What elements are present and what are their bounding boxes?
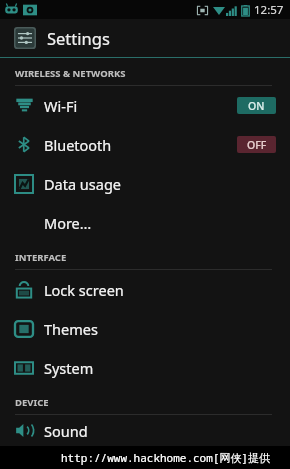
staticText: Sound (44, 421, 88, 441)
staticText: 12:57 (254, 2, 284, 18)
staticText: Data usage (44, 174, 121, 194)
staticText: http://www.hackhome.com[网侠]提供 (61, 450, 270, 465)
staticText: WIRELESS & NETWORKS (15, 67, 126, 80)
button[interactable]: OFF (237, 136, 276, 153)
button[interactable]: Bluetooth (0, 125, 290, 164)
other: Sound (15, 421, 34, 440)
staticText: Lock screen (44, 280, 124, 300)
other: Bluetooth (15, 135, 34, 154)
button[interactable]: Settings (0, 19, 290, 57)
other: System (15, 359, 33, 377)
staticText: Wi-Fi (44, 96, 78, 116)
staticText: Settings (47, 27, 110, 49)
staticText: DEVICE (15, 396, 49, 409)
button[interactable]: Lock screen (0, 270, 290, 309)
other: Lock screen (15, 281, 33, 299)
staticText: Themes (44, 319, 98, 339)
staticText: Bluetooth (44, 135, 112, 155)
staticText: INTERFACE (15, 251, 67, 264)
staticText: More… (44, 213, 92, 233)
other: Wi-Fi (15, 96, 34, 115)
button[interactable]: ON (237, 97, 276, 114)
other: Themes (15, 320, 33, 338)
button[interactable]: System (0, 348, 290, 387)
button[interactable]: More… (0, 203, 290, 242)
staticText: OFF (247, 138, 267, 152)
staticText: System (44, 358, 94, 378)
button[interactable]: Data usage (0, 164, 290, 203)
button[interactable]: Themes (0, 309, 290, 348)
staticText: ON (248, 99, 265, 113)
button[interactable]: Wi-Fi (0, 86, 290, 125)
other: Data usage (15, 175, 33, 193)
button[interactable]: Sound (0, 415, 290, 446)
